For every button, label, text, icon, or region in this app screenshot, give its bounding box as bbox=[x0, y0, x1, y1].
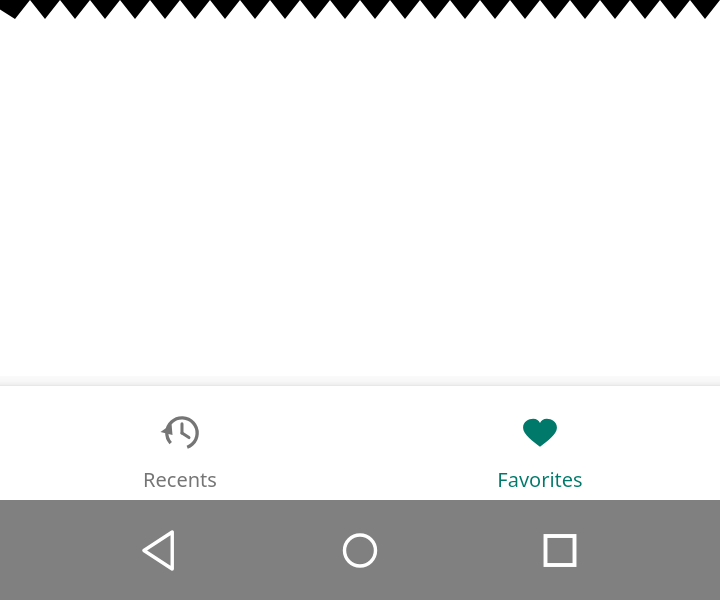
other: Favorites bbox=[518, 411, 562, 455]
button[interactable]: Favorites bbox=[360, 386, 720, 500]
other: Recents bbox=[158, 411, 202, 455]
button[interactable]: Home bbox=[240, 500, 480, 600]
staticText: Recents bbox=[143, 466, 217, 493]
staticText: Favorites bbox=[497, 466, 583, 493]
button[interactable]: Overview bbox=[480, 500, 720, 600]
button[interactable]: Recents bbox=[0, 386, 360, 500]
button[interactable]: Back bbox=[0, 500, 240, 600]
